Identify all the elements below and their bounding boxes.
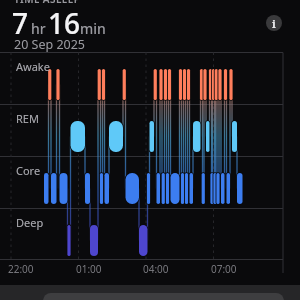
staticText: 07:00 xyxy=(211,262,237,276)
staticText: 01:00 xyxy=(76,262,102,276)
staticText: TIME ASLEEP xyxy=(14,0,81,6)
staticText: Deep xyxy=(16,215,44,230)
staticText: Core xyxy=(16,163,41,178)
staticText: 16 xyxy=(48,4,81,42)
staticText: 04:00 xyxy=(143,262,169,276)
staticText: 7 xyxy=(12,4,29,42)
staticText: min xyxy=(80,19,106,38)
staticText: hr xyxy=(31,19,46,38)
button[interactable]: i xyxy=(266,15,282,31)
staticText: i xyxy=(272,16,276,31)
staticText: 22:00 xyxy=(8,262,34,276)
staticText: 20 Sep 2025 xyxy=(14,36,86,53)
staticText: Awake xyxy=(16,59,50,74)
staticText: REM xyxy=(16,111,39,126)
